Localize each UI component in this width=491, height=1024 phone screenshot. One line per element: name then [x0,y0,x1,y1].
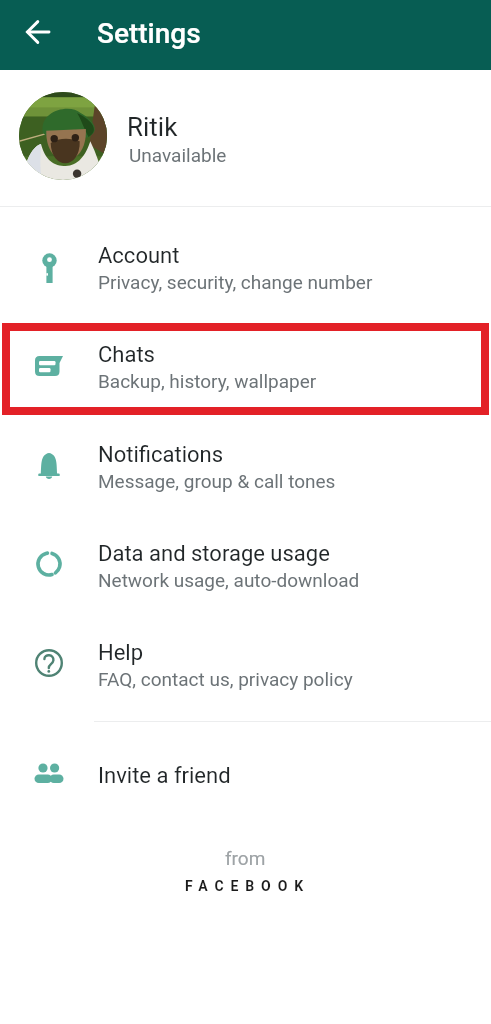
staticText: Account [98,243,180,269]
staticText: Message, group & call tones [98,470,336,492]
button[interactable]: Help [0,614,491,699]
staticText: from [225,847,266,869]
staticText: Notifications [98,442,224,468]
button[interactable]: Invite a friend [0,737,491,807]
staticText: Backup, history, wallpaper [98,370,317,392]
staticText: Help [98,640,144,666]
staticText: Chats [98,342,155,368]
staticText: Ritik [127,112,178,142]
button[interactable]: Chats [0,316,491,401]
button[interactable]: Data and storage usage [0,515,491,600]
button[interactable]: Account [0,217,491,302]
staticText: Settings [97,17,201,50]
button[interactable]: Navigate back [14,8,62,56]
staticText: Invite a friend [98,763,231,789]
button[interactable]: Ritik [0,70,491,206]
staticText: FAQ, contact us, privacy policy [98,668,353,690]
staticText: FACEBOOK [185,878,311,894]
staticText: Network usage, auto-download [98,569,360,591]
staticText: Privacy, security, change number [98,271,373,293]
staticText: Unavailable [129,144,227,166]
staticText: Data and storage usage [98,541,330,567]
button[interactable]: Notifications [0,416,491,501]
